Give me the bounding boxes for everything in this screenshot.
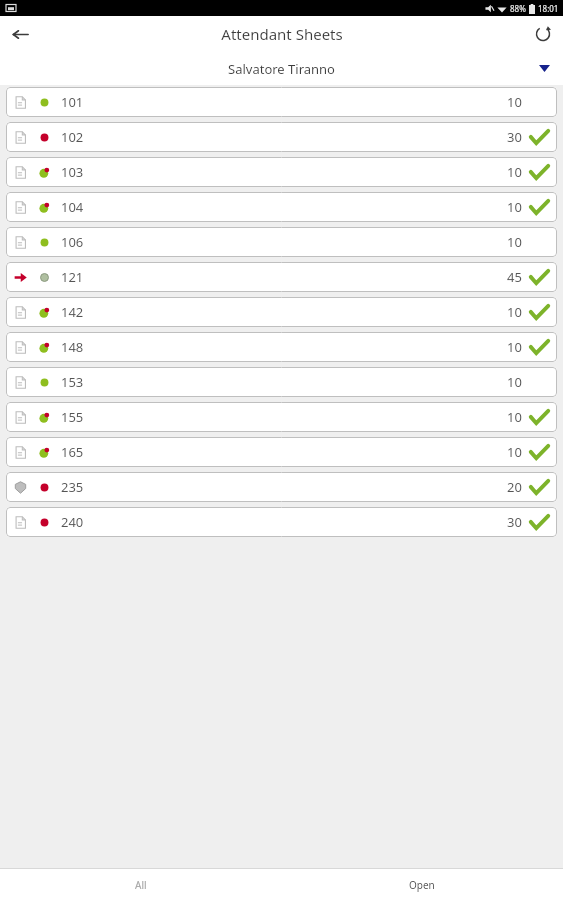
- staticText: 103: [61, 163, 84, 181]
- button[interactable]: 104: [6, 192, 557, 222]
- staticText: 10: [507, 338, 522, 356]
- button[interactable]: 101: [6, 87, 557, 117]
- staticText: 10: [507, 93, 522, 111]
- button[interactable]: 153: [6, 367, 557, 397]
- staticText: 240: [61, 513, 84, 531]
- button[interactable]: 240: [6, 507, 557, 537]
- button[interactable]: 155: [6, 402, 557, 432]
- staticText: 10: [507, 198, 522, 216]
- staticText: 10: [507, 373, 522, 391]
- button[interactable]: All: [0, 869, 281, 900]
- button[interactable]: Refresh: [523, 16, 563, 52]
- button[interactable]: 165: [6, 437, 557, 467]
- button[interactable]: Open: [281, 869, 563, 900]
- staticText: Salvatore Tiranno: [228, 60, 335, 78]
- button[interactable]: Salvatore Tiranno: [0, 52, 563, 85]
- button[interactable]: 106: [6, 227, 557, 257]
- button[interactable]: Back: [0, 16, 40, 52]
- staticText: 155: [61, 408, 84, 426]
- staticText: Open: [409, 878, 435, 892]
- button[interactable]: 148: [6, 332, 557, 362]
- staticText: 165: [61, 443, 84, 461]
- staticText: 104: [61, 198, 84, 216]
- staticText: 88%: [510, 3, 526, 14]
- staticText: 10: [507, 233, 522, 251]
- staticText: Attendant Sheets: [221, 24, 343, 44]
- button[interactable]: 121: [6, 262, 557, 292]
- staticText: 10: [507, 303, 522, 321]
- button[interactable]: 235: [6, 472, 557, 502]
- staticText: 101: [61, 93, 84, 111]
- staticText: 10: [507, 163, 522, 181]
- button[interactable]: 142: [6, 297, 557, 327]
- button[interactable]: 103: [6, 157, 557, 187]
- staticText: 102: [61, 128, 84, 146]
- staticText: 148: [61, 338, 84, 356]
- staticText: All: [135, 878, 147, 892]
- staticText: 30: [507, 128, 522, 146]
- button[interactable]: 102: [6, 122, 557, 152]
- staticText: 106: [61, 233, 84, 251]
- staticText: 235: [61, 478, 84, 496]
- staticText: 18:01: [538, 3, 559, 14]
- staticText: 45: [507, 268, 522, 286]
- staticText: 20: [507, 478, 522, 496]
- staticText: 10: [507, 408, 522, 426]
- staticText: 142: [61, 303, 84, 321]
- staticText: 30: [507, 513, 522, 531]
- staticText: 153: [61, 373, 84, 391]
- staticText: 10: [507, 443, 522, 461]
- staticText: 121: [61, 268, 84, 286]
